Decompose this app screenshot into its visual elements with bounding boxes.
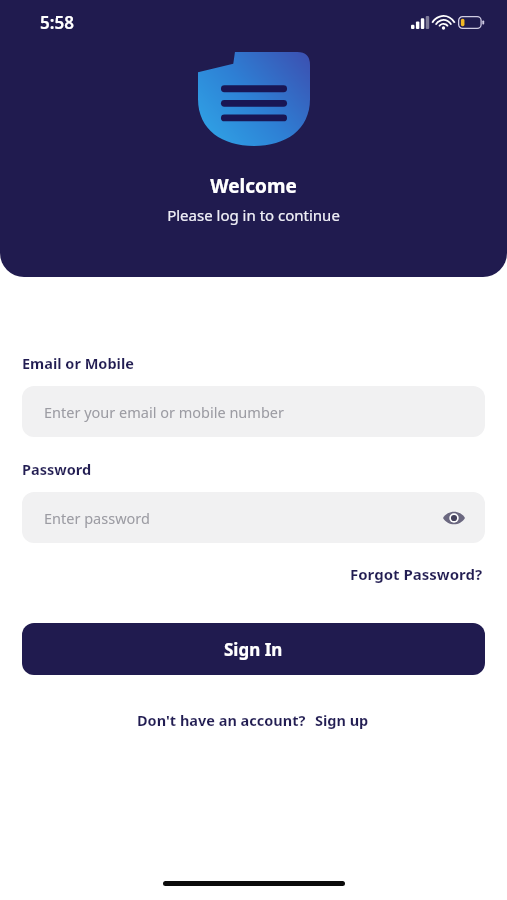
button[interactable]: Enter password xyxy=(22,492,485,543)
button[interactable]: Sign In xyxy=(22,623,485,675)
staticText: Don't have an account? xyxy=(137,710,306,730)
staticText: Welcome xyxy=(210,173,297,199)
button[interactable]: Sign up xyxy=(313,707,371,733)
button[interactable]: Enter your email or mobile number xyxy=(22,386,485,437)
staticText: Email or Mobile xyxy=(22,353,134,373)
button[interactable]: Show password xyxy=(437,501,471,535)
staticText: Enter your email or mobile number xyxy=(44,402,284,422)
staticText: 5:58 xyxy=(40,11,74,34)
staticText: Forgot Password? xyxy=(350,564,483,584)
staticText: Password xyxy=(22,459,92,479)
staticText: Sign up xyxy=(315,710,369,730)
staticText: Enter password xyxy=(44,508,150,528)
staticText: Please log in to continue xyxy=(167,205,340,225)
button[interactable]: Forgot Password? xyxy=(348,561,485,587)
staticText: Sign In xyxy=(224,638,283,661)
